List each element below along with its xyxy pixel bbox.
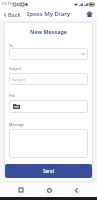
staticText: 10:19 xyxy=(1,1,12,7)
button[interactable]: Recent apps xyxy=(14,183,28,197)
staticText: File xyxy=(9,93,15,98)
staticText: Subject xyxy=(12,77,26,82)
button[interactable]: Send xyxy=(5,164,92,178)
staticText: Send xyxy=(43,168,54,174)
button[interactable]: Home xyxy=(42,183,56,197)
button[interactable]: Attach file xyxy=(9,100,23,113)
button[interactable]: Subject xyxy=(9,73,88,85)
button[interactable]: Home xyxy=(83,8,95,20)
staticText: Ipsos My Diary xyxy=(27,10,71,18)
staticText: Message xyxy=(9,122,24,127)
button[interactable] xyxy=(9,48,88,60)
button[interactable] xyxy=(9,129,88,158)
staticText: New Message xyxy=(30,28,68,35)
staticText: Subject xyxy=(9,66,22,71)
button[interactable]: Back xyxy=(69,183,83,197)
staticText: Back xyxy=(8,11,21,18)
button[interactable]: Back xyxy=(0,9,24,20)
staticText: To xyxy=(9,43,13,48)
